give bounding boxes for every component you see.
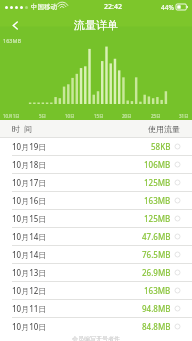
button[interactable]: 10月15日: [0, 210, 192, 227]
button[interactable]: 10月14日: [0, 228, 192, 245]
staticText: 10月14日: [12, 231, 47, 242]
staticText: 10月1日: [3, 113, 20, 119]
staticText: 94.8MB: [142, 303, 171, 314]
staticText: 163MB: [144, 195, 171, 206]
staticText: 10月11日: [12, 303, 47, 314]
staticText: 25日: [151, 113, 161, 119]
button[interactable]: 10月16日: [0, 192, 192, 209]
staticText: 流量详单: [74, 18, 118, 32]
staticText: 10月18日: [12, 159, 47, 170]
staticText: 125MB: [144, 177, 171, 188]
button[interactable]: 10月18日: [0, 156, 192, 173]
staticText: 10月19日: [12, 141, 47, 152]
staticText: 125MB: [144, 213, 171, 224]
button[interactable]: 10月13日: [0, 264, 192, 281]
staticText: 10月15日: [12, 213, 47, 224]
staticText: 10月16日: [12, 195, 47, 206]
staticText: 15日: [94, 113, 104, 119]
staticText: 84.8MB: [142, 321, 171, 332]
button[interactable]: 10月11日: [0, 300, 192, 317]
staticText: 22:42: [104, 2, 122, 12]
staticText: 76.5MB: [142, 249, 171, 260]
staticText: 时 间: [12, 123, 33, 134]
staticText: 使用流量: [148, 124, 180, 134]
staticText: 10月10日: [12, 321, 47, 332]
staticText: 47.6MB: [142, 231, 171, 242]
staticText: 31日: [179, 113, 189, 119]
button[interactable]: 10月10日: [0, 318, 192, 335]
staticText: 58KB: [151, 141, 171, 152]
staticText: 20日: [122, 113, 132, 119]
button[interactable]: 返回: [4, 14, 26, 36]
staticText: 中国移动: [31, 3, 57, 11]
button[interactable]: 10月19日: [0, 138, 192, 155]
staticText: 会员编写开号者件: [72, 335, 120, 341]
button[interactable]: 10月17日: [0, 174, 192, 191]
staticText: 106MB: [144, 159, 171, 170]
staticText: 44%: [161, 3, 174, 12]
staticText: 10月17日: [12, 177, 47, 188]
staticText: 10月12日: [12, 285, 47, 296]
staticText: 163MB: [3, 37, 22, 44]
staticText: 26.9MB: [142, 267, 171, 278]
button[interactable]: 10月14日: [0, 246, 192, 263]
staticText: 10月13日: [12, 267, 47, 278]
staticText: 10日: [65, 113, 75, 119]
staticText: 163MB: [144, 285, 171, 296]
staticText: 5日: [39, 113, 47, 119]
button[interactable]: 10月12日: [0, 282, 192, 299]
staticText: 10月14日: [12, 249, 47, 260]
